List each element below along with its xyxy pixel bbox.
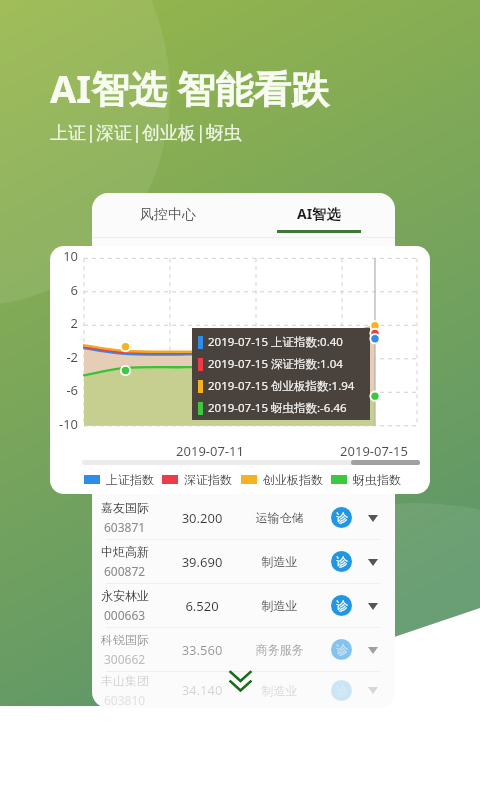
button[interactable]: 嘉友国际 (92, 496, 395, 539)
staticText: 2 (50, 314, 78, 332)
staticText: 科锐国际 (101, 632, 149, 647)
staticText: -10 (50, 415, 78, 433)
staticText: 制造业 (247, 554, 312, 569)
button[interactable]: 永安林业 (92, 584, 395, 627)
button[interactable]: 诊股 (331, 507, 352, 528)
staticText: 2019-07-15 (329, 442, 419, 460)
staticText: 嘉友国际 (101, 500, 149, 515)
staticText: 000663 (104, 607, 146, 623)
button[interactable]: 诊股 (331, 551, 352, 572)
staticText: -6 (50, 381, 78, 399)
staticText: 2019-07-11 (165, 442, 255, 460)
button[interactable]: 展开 (365, 598, 381, 614)
staticText: 2019-07-15 上证指数:0.40 (208, 334, 343, 350)
staticText: 6 (50, 281, 78, 299)
button[interactable]: 展开 (365, 642, 381, 658)
staticText: 商务服务 (247, 642, 312, 657)
staticText: 中炬高新 (101, 544, 149, 559)
button[interactable]: 诊股 (331, 680, 352, 701)
button[interactable]: 诊股 (331, 639, 352, 660)
staticText: 2019-07-15 蚜虫指数:-6.46 (208, 400, 347, 416)
staticText: 诊 (336, 554, 348, 569)
staticText: AI智选 (297, 204, 341, 223)
button[interactable]: 中炬高新 (92, 540, 395, 583)
staticText: 33.560 (157, 641, 247, 659)
staticText: 创业板指数 (263, 472, 323, 487)
staticText: AI智选 智能看跌 (50, 62, 329, 114)
button[interactable]: 丰山集团 (92, 672, 395, 708)
staticText: 6.520 (157, 597, 247, 615)
button[interactable]: 风控中心 (92, 193, 243, 237)
staticText: 诊 (336, 598, 348, 613)
staticText: 上证|深证|创业板|蚜虫 (50, 120, 242, 145)
staticText: 2019-07-15 深证指数:1.04 (208, 356, 343, 372)
staticText: 诊 (336, 510, 348, 525)
button[interactable]: 科锐国际 (92, 628, 395, 671)
staticText: 风控中心 (140, 206, 196, 224)
button[interactable]: 诊股 (331, 595, 352, 616)
staticText: 制造业 (247, 683, 312, 698)
staticText: 39.690 (157, 553, 247, 571)
staticText: 603871 (104, 519, 146, 535)
staticText: 300662 (104, 651, 146, 667)
staticText: 600872 (104, 563, 146, 579)
staticText: 诊 (336, 683, 348, 698)
staticText: 蚜虫指数 (353, 472, 401, 487)
staticText: -2 (50, 348, 78, 366)
staticText: 运输仓储 (247, 510, 312, 525)
staticText: 30.200 (157, 509, 247, 527)
button[interactable]: AI智选 (243, 193, 395, 237)
staticText: 2019-07-15 创业板指数:1.94 (208, 378, 355, 394)
staticText: 10 (50, 247, 78, 265)
staticText: 诊 (336, 642, 348, 657)
staticText: 603810 (104, 692, 146, 708)
staticText: 34.140 (157, 681, 247, 699)
staticText: 制造业 (247, 598, 312, 613)
button[interactable]: 展开 (365, 510, 381, 526)
button[interactable]: 加载更多 (230, 671, 251, 692)
staticText: 永安林业 (101, 588, 149, 603)
staticText: 上证指数 (106, 472, 154, 487)
staticText: 深证指数 (184, 472, 232, 487)
button[interactable]: 展开 (365, 554, 381, 570)
staticText: 丰山集团 (101, 673, 149, 688)
button[interactable]: 展开 (365, 682, 381, 698)
